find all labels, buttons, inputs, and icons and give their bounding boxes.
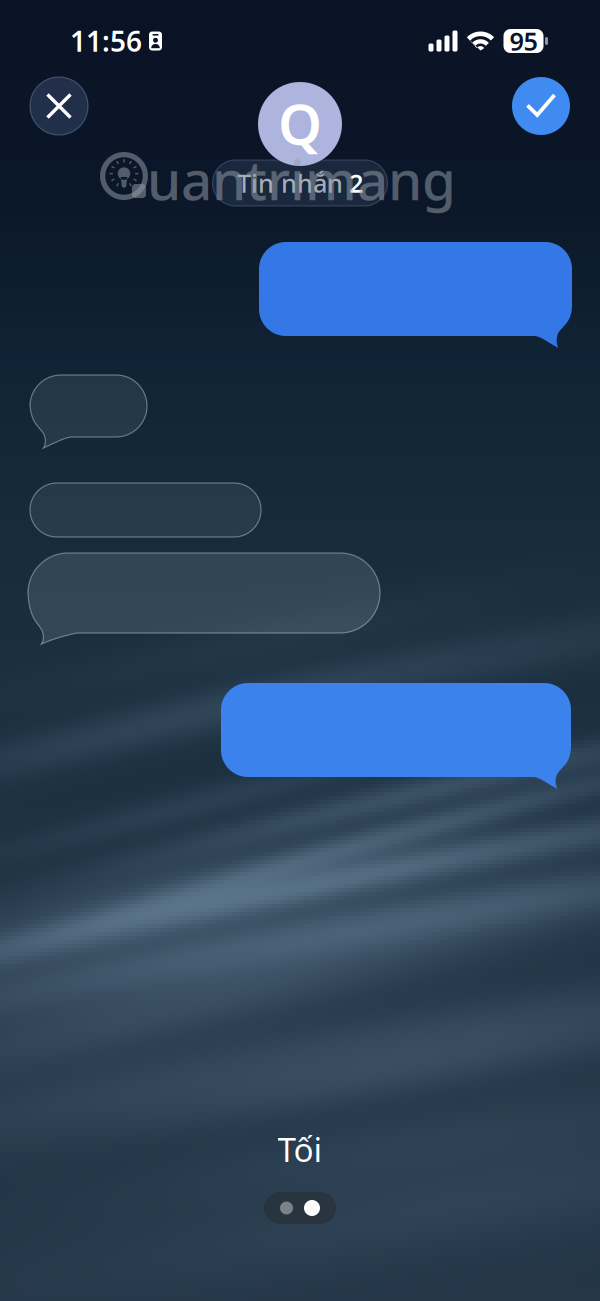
staticText: Q: [278, 86, 322, 160]
staticText: 95: [509, 24, 537, 58]
button[interactable]: Done: [512, 77, 570, 135]
button[interactable]: Page indicator: [264, 1192, 336, 1224]
staticText: uantrimang: [147, 143, 456, 215]
staticText: 11:56: [70, 22, 142, 60]
staticText: Tối: [277, 1127, 322, 1171]
staticText: 2: [349, 166, 363, 200]
staticText: Tin nhắn: [237, 166, 343, 200]
button[interactable]: Cancel: [30, 77, 88, 135]
